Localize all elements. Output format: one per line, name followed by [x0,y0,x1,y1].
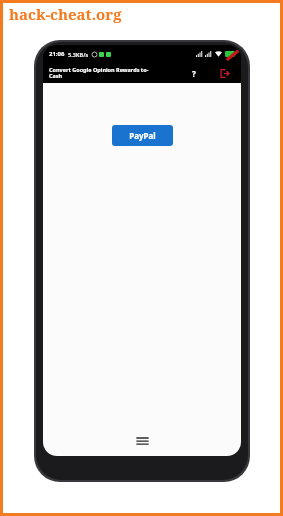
staticText: PayPal [129,130,156,141]
staticText: hack-cheat.org [9,4,122,24]
staticText: 21:06 [49,50,65,58]
button[interactable]: Help [186,65,202,81]
button[interactable]: Logout [216,65,232,81]
button[interactable]: PayPal [112,125,173,146]
staticText: 5.3KB/s [68,51,89,58]
staticText: Convert Google Opinion Rewards to-Cash [49,66,153,80]
staticText: ? [192,68,196,79]
button[interactable]: Menu [132,431,152,451]
